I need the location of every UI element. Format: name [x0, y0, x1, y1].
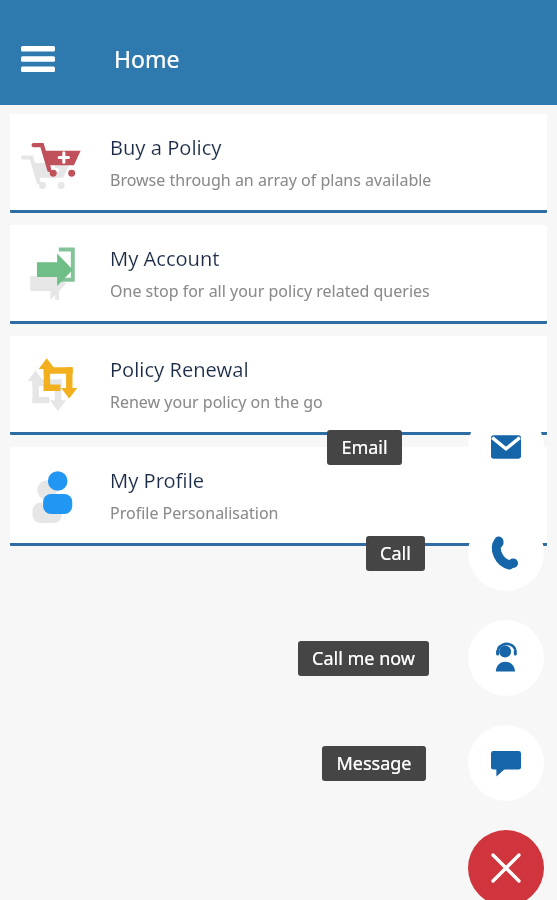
button[interactable]: Message	[468, 725, 544, 801]
button[interactable]: Policy Renewal	[10, 336, 547, 435]
button[interactable]: Email	[327, 430, 402, 465]
staticText: Browse through an array of plans availab…	[110, 169, 432, 191]
button[interactable]: Close menu	[468, 830, 544, 900]
button[interactable]: Open navigation menu	[14, 35, 62, 83]
staticText: Buy a Policy	[110, 134, 222, 161]
staticText: Call	[380, 541, 411, 566]
staticText: Message	[336, 751, 412, 776]
button[interactable]: Message	[322, 746, 426, 781]
button[interactable]: Call me now	[298, 641, 429, 676]
button[interactable]: Call	[468, 515, 544, 591]
staticText: Renew your policy on the go	[110, 391, 323, 413]
staticText: Call me now	[312, 646, 415, 671]
staticText: Home	[114, 43, 180, 74]
staticText: Policy Renewal	[110, 356, 249, 383]
staticText: My Profile	[110, 467, 205, 494]
staticText: Email	[341, 435, 388, 460]
staticText: One stop for all your policy related que…	[110, 280, 430, 302]
button[interactable]: Call me now	[468, 620, 544, 696]
button[interactable]: My Profile	[10, 447, 547, 546]
button[interactable]: Buy a Policy	[10, 114, 547, 213]
button[interactable]: Email	[468, 409, 544, 485]
button[interactable]: Call	[366, 536, 425, 571]
staticText: My Account	[110, 245, 220, 272]
staticText: Profile Personalisation	[110, 502, 279, 524]
button[interactable]: My Account	[10, 225, 547, 324]
